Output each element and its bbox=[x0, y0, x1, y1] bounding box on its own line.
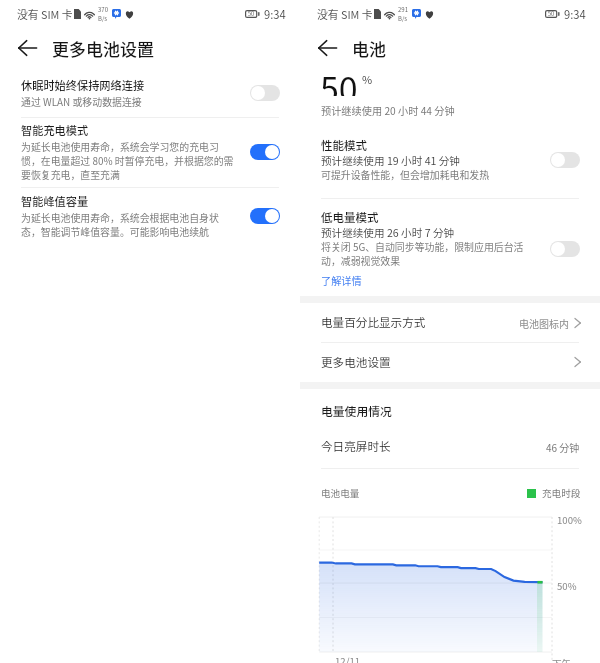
staticText: 50 bbox=[248, 10, 255, 18]
staticText: 46 分钟 bbox=[546, 440, 580, 454]
staticText: 低电量模式 bbox=[321, 209, 379, 226]
staticText: 为延长电池使用寿命，系统会学习您的充电习 bbox=[21, 140, 219, 154]
button[interactable] bbox=[250, 144, 280, 160]
button[interactable]: Back bbox=[314, 35, 340, 61]
button[interactable]: Back bbox=[14, 35, 40, 61]
staticText: 性能模式 bbox=[321, 137, 367, 154]
button[interactable] bbox=[550, 152, 580, 168]
staticText: 电量百分比显示方式 bbox=[321, 314, 519, 331]
staticText: 电池 bbox=[352, 36, 386, 61]
staticText: 下午 bbox=[552, 656, 572, 663]
staticText: 为延长电池使用寿命，系统会根据电池自身状 bbox=[21, 211, 219, 225]
staticText: 智能充电模式 bbox=[21, 122, 89, 138]
button[interactable]: 今日亮屏时长 bbox=[300, 438, 600, 455]
staticText: 智能峰值容量 bbox=[21, 193, 89, 209]
staticText: 电池图标内 bbox=[519, 316, 569, 330]
staticText: % bbox=[362, 71, 373, 87]
staticText: 50% bbox=[557, 579, 577, 593]
staticText: 370 bbox=[98, 5, 108, 14]
staticText: 充电时段 bbox=[542, 486, 581, 500]
button[interactable]: 低电量模式 bbox=[300, 209, 600, 288]
staticText: 预计继续使用 20 小时 44 分钟 bbox=[321, 103, 455, 118]
staticText: 电量使用情况 bbox=[321, 402, 392, 419]
staticText: 100% bbox=[557, 513, 582, 527]
staticText: 50 bbox=[320, 63, 358, 96]
button[interactable]: 智能峰值容量 bbox=[0, 193, 300, 239]
staticText: 要恢复充电，直至充满 bbox=[21, 168, 120, 182]
staticText: 更多电池设置 bbox=[52, 36, 154, 61]
staticText: 惯，在电量超过 80% 时暂停充电，并根据您的需 bbox=[21, 154, 234, 168]
staticText: 预计继续使用 26 小时 7 分钟 bbox=[321, 225, 455, 240]
staticText: 了解详情 bbox=[321, 273, 362, 288]
button[interactable] bbox=[550, 241, 580, 257]
button[interactable]: 休眠时始终保持网络连接 bbox=[0, 77, 300, 109]
staticText: 12/11 bbox=[335, 654, 361, 663]
staticText: 291 bbox=[398, 5, 408, 14]
staticText: 动，减弱视觉效果 bbox=[321, 254, 401, 268]
button[interactable]: 了解详情 bbox=[321, 273, 362, 288]
staticText: 更多电池设置 bbox=[321, 354, 573, 371]
staticText: B/s bbox=[398, 14, 408, 23]
button[interactable]: 电量百分比显示方式 bbox=[300, 303, 600, 342]
staticText: 9:34 bbox=[264, 6, 286, 22]
button[interactable] bbox=[250, 208, 280, 224]
staticText: 态，智能调节峰值容量。可能影响电池续航 bbox=[21, 225, 209, 239]
staticText: 将关闭 5G、自动同步等功能，限制应用后台活 bbox=[321, 240, 524, 254]
staticText: 通过 WLAN 或移动数据连接 bbox=[21, 95, 142, 109]
button[interactable]: 性能模式 bbox=[300, 137, 600, 183]
staticText: 50 bbox=[548, 10, 555, 18]
staticText: B/s bbox=[98, 14, 108, 23]
staticText: 没有 SIM 卡 bbox=[317, 6, 373, 22]
staticText: 预计继续使用 19 小时 41 分钟 bbox=[321, 153, 460, 168]
staticText: 休眠时始终保持网络连接 bbox=[21, 77, 145, 93]
staticText: 9:34 bbox=[564, 6, 586, 22]
button[interactable]: 更多电池设置 bbox=[300, 343, 600, 381]
staticText: 电池电量 bbox=[321, 486, 527, 500]
staticText: 今日亮屏时长 bbox=[321, 438, 546, 455]
button[interactable] bbox=[250, 85, 280, 101]
staticText: 没有 SIM 卡 bbox=[17, 6, 73, 22]
button[interactable]: 智能充电模式 bbox=[0, 122, 300, 182]
staticText: 可提升设备性能，但会增加耗电和发热 bbox=[321, 168, 490, 182]
